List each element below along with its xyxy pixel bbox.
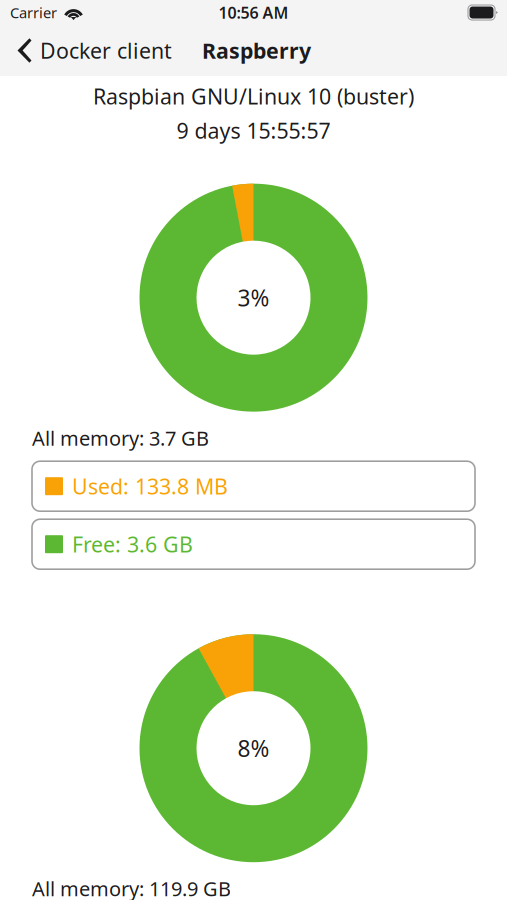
staticText: Carrier [10, 3, 57, 22]
staticText: Free: 3.6 GB [72, 530, 193, 558]
staticText: All memory: 3.7 GB [32, 425, 209, 451]
staticText: 8% [237, 733, 269, 763]
staticText: Used: 133.8 MB [72, 472, 228, 500]
button[interactable]: Free: 3.6 GB [32, 519, 475, 569]
staticText: 3% [237, 283, 269, 313]
staticText: Raspbian GNU/Linux 10 (buster) [93, 82, 414, 110]
staticText: 9 days 15:55:57 [176, 116, 330, 145]
button[interactable]: Docker client [0, 25, 184, 76]
staticText: All memory: 119.9 GB [32, 875, 231, 900]
staticText: 10:56 AM [218, 2, 288, 23]
button[interactable]: Used: 133.8 MB [32, 461, 475, 511]
staticText: Docker client [40, 36, 172, 65]
staticText: Raspberry [202, 36, 311, 65]
